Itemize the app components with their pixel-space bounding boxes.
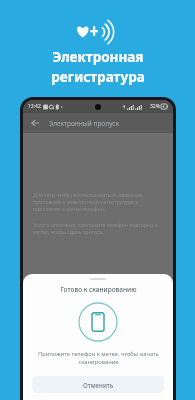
staticText: 13:42 bbox=[28, 103, 41, 110]
button[interactable]: Назад bbox=[29, 117, 41, 129]
staticText: Отменить bbox=[83, 381, 114, 389]
button[interactable]: Отменить bbox=[32, 376, 164, 393]
staticText: Приложите телефон к метке, чтобы начать … bbox=[38, 350, 159, 366]
staticText: 32% bbox=[150, 103, 160, 110]
staticText: Для того чтобы воспользоваться сервисом,… bbox=[33, 191, 163, 212]
staticText: Услуга оплачена, приложите телефон повто… bbox=[33, 221, 163, 235]
staticText: Электронная bbox=[52, 48, 144, 66]
staticText: Готово к сканированию bbox=[60, 285, 137, 294]
staticText: регистратура bbox=[51, 68, 145, 86]
staticText: Электронный пропуск bbox=[49, 119, 119, 128]
